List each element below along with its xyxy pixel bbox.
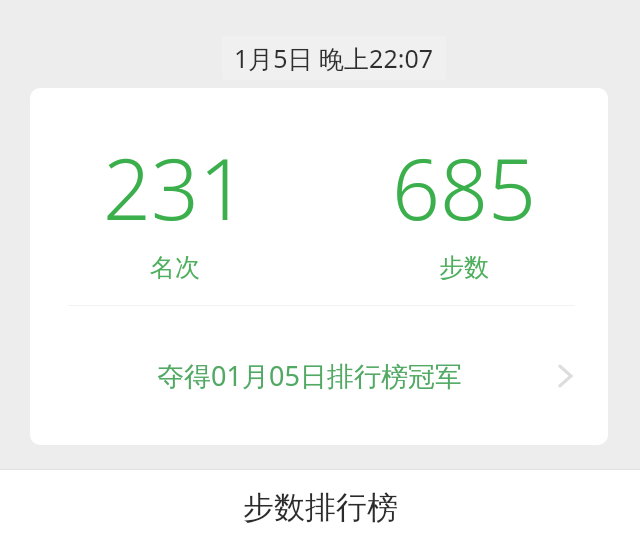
button[interactable]: 夺得01月05日排行榜冠军 — [30, 306, 608, 445]
staticText: 685 — [392, 130, 536, 244]
staticText: 夺得01月05日排行榜冠军 — [157, 357, 462, 394]
staticText: 1月5日 晚上22:07 — [234, 41, 434, 75]
button[interactable]: 步数排行榜 — [0, 470, 640, 545]
staticText: 步数 — [439, 252, 489, 283]
staticText: 步数排行榜 — [243, 488, 398, 527]
staticText: 231 — [103, 130, 247, 244]
other: 查看排行榜 — [550, 361, 580, 391]
staticText: 名次 — [150, 252, 200, 283]
